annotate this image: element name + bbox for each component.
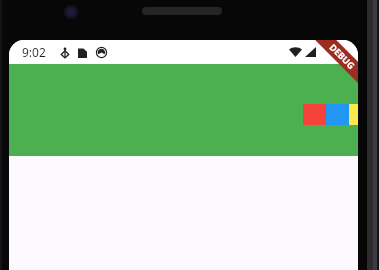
staticText: 9:02 [22,44,46,60]
staticText: DEBUG [327,41,358,71]
